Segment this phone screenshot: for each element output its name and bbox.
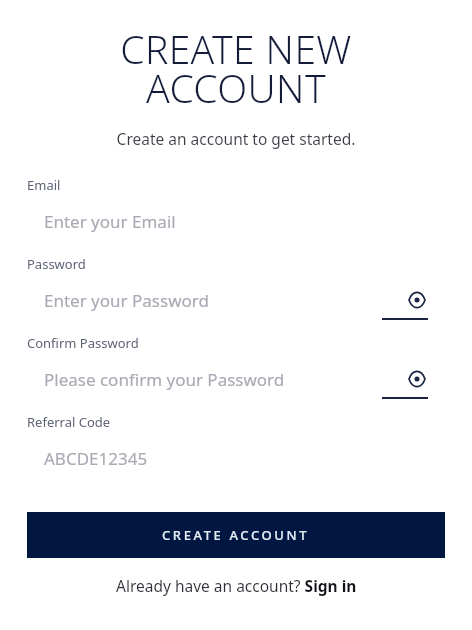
button[interactable]: Show password [406,368,428,390]
staticText: Email [27,176,61,194]
button[interactable]: Please confirm your Password [27,361,445,397]
button[interactable]: Already have an account? Sign in [116,575,357,596]
staticText: CREATE NEW ACCOUNT [24,22,448,114]
staticText: Create an account to get started. [0,128,472,149]
button[interactable]: ABCDE12345 [27,440,445,476]
staticText: ABCDE12345 [44,447,148,470]
staticText: Enter your Email [44,210,176,233]
staticText: Already have an account? Sign in [116,575,357,596]
staticText: Password [27,255,86,273]
button[interactable]: CREATE ACCOUNT [27,512,445,558]
staticText: Please confirm your Password [44,368,285,391]
staticText: Referral Code [27,413,111,431]
staticText: Confirm Password [27,334,139,352]
button[interactable]: Show password [406,289,428,311]
staticText: CREATE ACCOUNT [162,526,310,544]
button[interactable]: Enter your Email [27,203,445,239]
button[interactable]: Enter your Password [27,282,445,318]
staticText: Enter your Password [44,289,209,312]
